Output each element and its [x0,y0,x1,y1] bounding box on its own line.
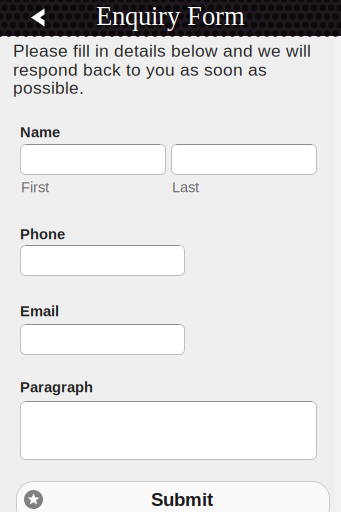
staticText: Submit [151,489,213,510]
staticText: Name [20,124,60,140]
staticText: respond back to you as soon as [13,60,267,79]
staticText: Enquiry Form [96,1,245,31]
button[interactable]: Back [0,0,54,36]
staticText: Paragraph [20,379,93,395]
staticText: First [21,179,49,195]
button[interactable]: Submit [16,481,330,512]
staticText: possible. [13,78,84,97]
staticText: Email [20,303,59,319]
staticText: Phone [20,226,65,242]
staticText: Please fill in details below and we will [13,41,311,60]
staticText: Last [172,179,199,195]
